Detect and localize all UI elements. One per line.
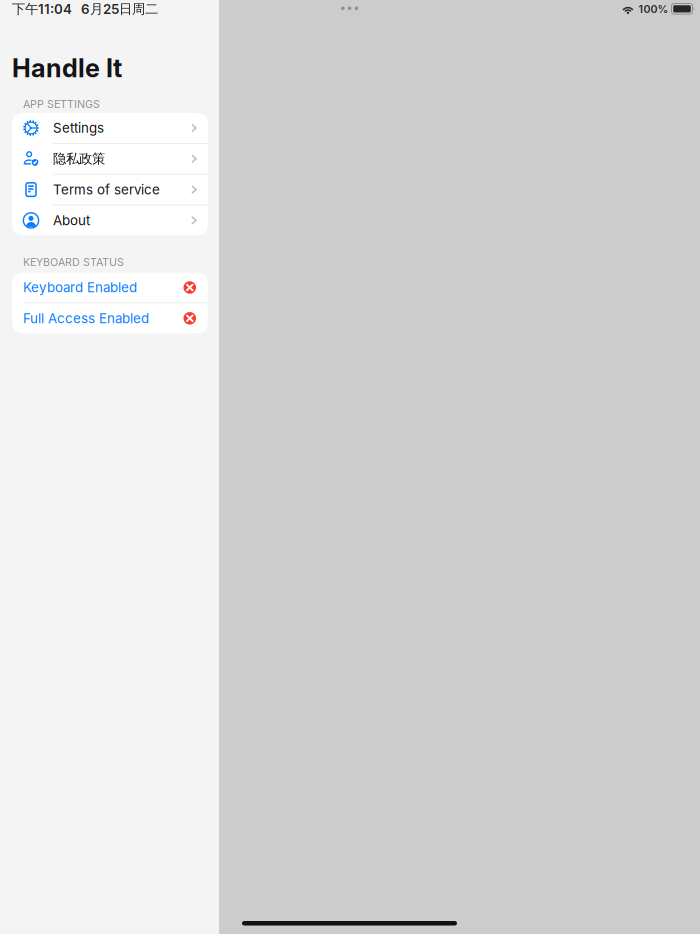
staticText: 下午11:04 6月25日周二: [12, 1, 158, 17]
staticText: KEYBOARD STATUS: [23, 256, 124, 268]
staticText: Handle It: [12, 53, 122, 83]
staticText: About: [53, 212, 90, 228]
staticText: APP SETTINGS: [23, 98, 100, 110]
button[interactable]: Full Access Enabled: [12, 303, 208, 333]
button[interactable]: 隐私政策: [12, 144, 208, 174]
button[interactable]: Terms of service: [12, 175, 208, 205]
button[interactable]: Keyboard Enabled: [12, 272, 208, 302]
button[interactable]: Settings: [12, 113, 208, 143]
button[interactable]: About: [12, 205, 208, 235]
staticText: Settings: [53, 120, 104, 136]
staticText: 100%: [638, 3, 668, 15]
staticText: Terms of service: [53, 182, 160, 197]
staticText: Keyboard Enabled: [23, 280, 137, 295]
staticText: 隐私政策: [53, 151, 105, 167]
staticText: Full Access Enabled: [23, 310, 149, 326]
